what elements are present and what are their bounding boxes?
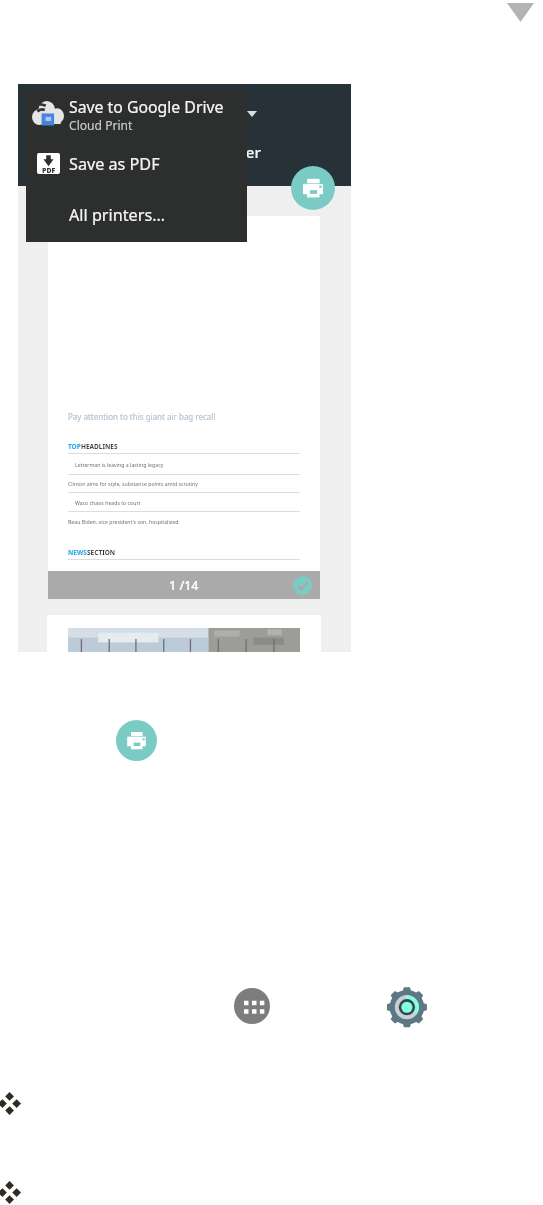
staticText: All printers… bbox=[69, 204, 165, 226]
button[interactable]: Save to Google Drive bbox=[26, 89, 247, 142]
button[interactable]: Print bbox=[291, 166, 335, 210]
staticText: printer bbox=[211, 142, 261, 162]
button[interactable]: Print bbox=[116, 720, 157, 761]
staticText: 1 /14 bbox=[169, 577, 199, 594]
staticText: Clinton aims for style, substance points… bbox=[68, 480, 198, 487]
staticText: Letterman is leaving a lasting legacy bbox=[75, 461, 164, 468]
staticText: TOP bbox=[68, 442, 81, 451]
staticText: Beau Biden, vice president's son, hospit… bbox=[68, 518, 179, 525]
staticText: Save to Google Drive bbox=[69, 96, 224, 118]
staticText: NEWS bbox=[68, 548, 87, 557]
button[interactable]: PDF bbox=[26, 142, 247, 188]
staticText: HEADLINES bbox=[81, 442, 118, 451]
button[interactable]: All printers… bbox=[26, 188, 247, 241]
button[interactable]: Settings bbox=[387, 987, 427, 1027]
staticText: PDF bbox=[42, 166, 56, 176]
staticText: Save as PDF bbox=[69, 153, 160, 175]
staticText: Waco chaos heads to court bbox=[75, 499, 141, 506]
staticText: Pay attention to this giant air bag reca… bbox=[68, 411, 216, 422]
other: Expand bbox=[507, 3, 534, 22]
staticText: Cloud Print bbox=[69, 117, 133, 133]
button[interactable]: Apps bbox=[234, 988, 270, 1024]
staticText: SECTION bbox=[87, 548, 116, 557]
